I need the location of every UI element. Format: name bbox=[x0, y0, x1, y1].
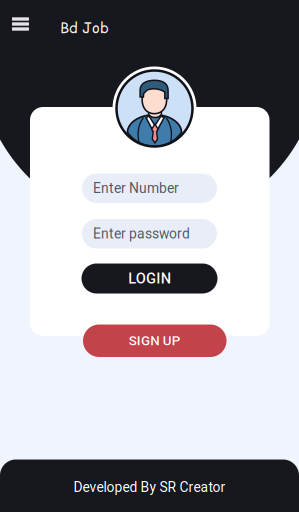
staticText: LOGIN bbox=[128, 270, 171, 287]
staticText: SIGN UP bbox=[129, 333, 181, 348]
button[interactable]: LOGIN bbox=[81, 263, 217, 293]
staticText: Developed By SR Creator bbox=[73, 479, 225, 495]
button[interactable]: Bd Job bbox=[60, 18, 120, 38]
button[interactable]: Menu bbox=[4, 8, 36, 40]
button[interactable]: SIGN UP bbox=[83, 324, 226, 357]
staticText: Enter password bbox=[93, 226, 190, 242]
staticText: Bd Job bbox=[60, 18, 109, 38]
staticText: Enter Number bbox=[93, 180, 179, 196]
